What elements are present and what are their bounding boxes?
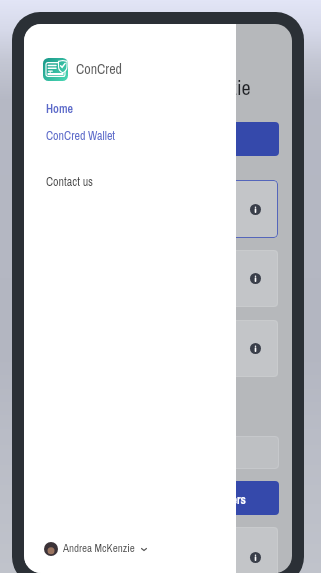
staticText: Contact us [46, 174, 94, 190]
button[interactable]: Information [38, 320, 278, 377]
button[interactable]: ConCred logo [43, 58, 122, 81]
other: Information [250, 343, 261, 354]
staticText: Home [46, 101, 73, 117]
other: Information [250, 552, 261, 563]
button[interactable]: ConCred Wallet [46, 128, 236, 144]
staticText: ConCred [76, 60, 122, 79]
button[interactable]: Information [38, 180, 278, 238]
staticText: Andrea McKenzie [63, 541, 135, 556]
other: ConCred logo [43, 58, 68, 81]
staticText: Welcome, Andrea McKenzie [44, 74, 251, 101]
button[interactable]: Andrea McKenzie [44, 541, 236, 556]
button[interactable]: Information [38, 527, 278, 573]
button[interactable] [174, 122, 279, 156]
staticText: Clear filters [193, 492, 246, 508]
other: Information [250, 204, 261, 215]
button[interactable]: Clear filters [144, 481, 279, 515]
staticText: ConCred Wallet [46, 128, 116, 144]
button[interactable] [38, 436, 279, 469]
other: Information [250, 273, 261, 284]
button[interactable]: Home [46, 101, 236, 117]
button[interactable]: Information [38, 250, 278, 307]
button[interactable]: Contact us [46, 174, 236, 190]
